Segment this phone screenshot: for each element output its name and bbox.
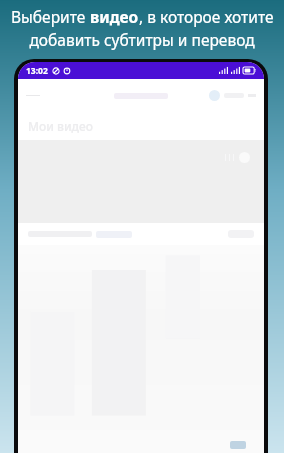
staticText: видео: [90, 6, 139, 27]
staticText: , в которое хотите: [139, 6, 274, 27]
button[interactable]: Action: [230, 441, 246, 449]
button[interactable]: [18, 79, 264, 112]
staticText: Мои видео: [28, 118, 93, 134]
staticText: Выберите: [11, 6, 90, 27]
staticText: 13:02: [26, 65, 48, 77]
button[interactable]: [18, 223, 264, 245]
staticText: добавить субтитры и перевод: [29, 29, 255, 50]
